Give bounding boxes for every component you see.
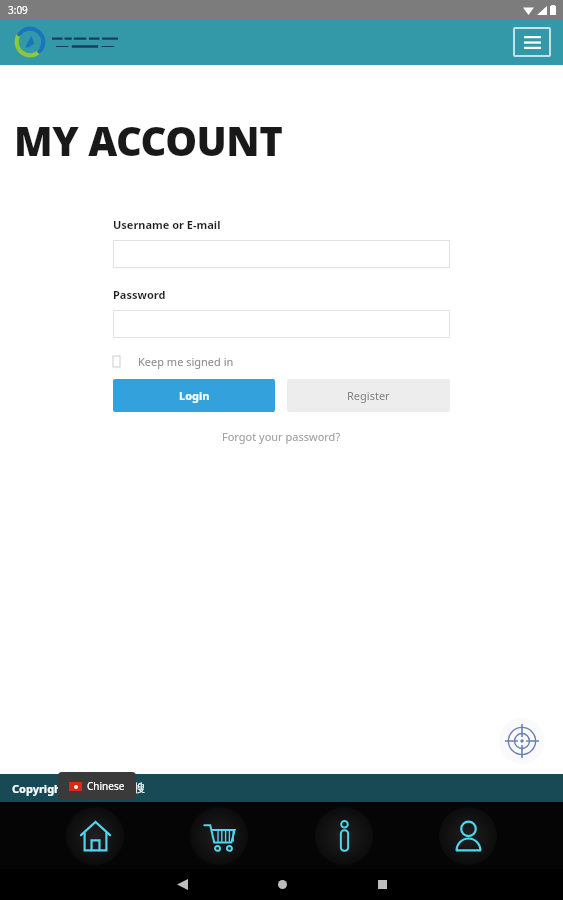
staticText: Username or E-mail (113, 217, 221, 232)
staticText: Chinese (87, 779, 125, 793)
button[interactable]: Login (113, 379, 275, 412)
button[interactable]: Account (439, 807, 497, 865)
button[interactable]: Menu (513, 27, 551, 57)
button[interactable]: Chinese (58, 772, 136, 800)
staticText: Copyright (12, 781, 67, 796)
staticText: 3:09 (8, 3, 28, 17)
button[interactable]: Recents (332, 869, 432, 900)
button[interactable]: Cart (190, 807, 248, 865)
button[interactable]: Register (287, 379, 450, 412)
button[interactable] (113, 240, 450, 268)
button[interactable]: Back (132, 869, 232, 900)
button[interactable]: Home (66, 807, 124, 865)
button[interactable]: Locate (499, 718, 545, 764)
button[interactable]: Keep me signed in (113, 354, 234, 369)
button[interactable] (113, 310, 450, 338)
button[interactable]: Forgot your password? (222, 429, 341, 444)
staticText: MY ACCOUNT (14, 113, 283, 167)
button[interactable] (16, 28, 118, 56)
staticText: Login (179, 388, 210, 403)
staticText: Register (347, 388, 390, 403)
staticText: Password (113, 287, 166, 302)
staticText: Keep me signed in (138, 354, 234, 369)
staticText: 搜 (134, 781, 145, 795)
button[interactable]: Home (232, 869, 332, 900)
button[interactable]: Info (315, 807, 373, 865)
